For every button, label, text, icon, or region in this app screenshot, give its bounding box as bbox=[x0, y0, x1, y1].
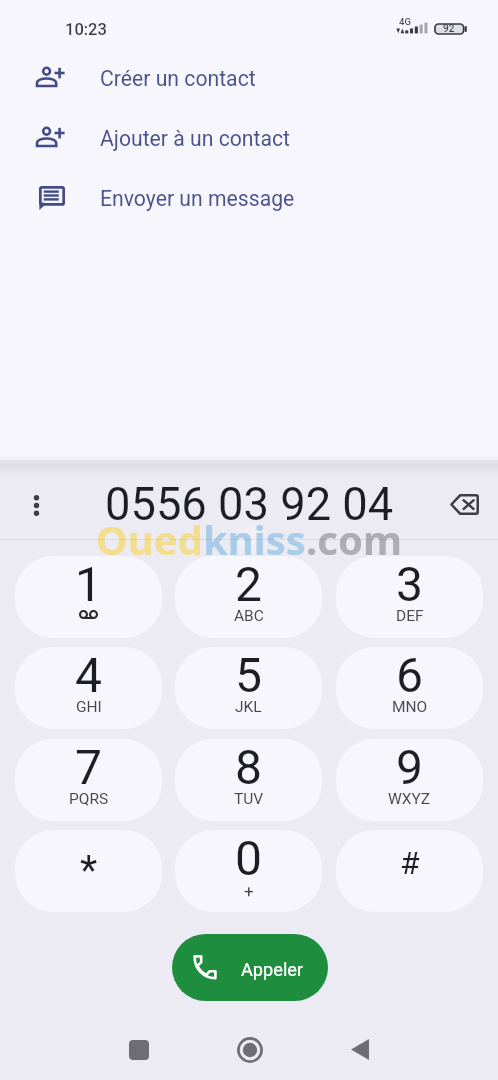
staticText: 92 bbox=[443, 23, 455, 35]
button[interactable]: 3 bbox=[336, 556, 483, 638]
staticText: JKL bbox=[235, 698, 262, 716]
staticText: 9 bbox=[396, 739, 423, 795]
button[interactable]: 7 bbox=[15, 739, 162, 821]
staticText: Oued bbox=[96, 512, 203, 566]
button[interactable]: Créer un contact bbox=[0, 48, 498, 108]
button[interactable]: 9 bbox=[336, 739, 483, 821]
button[interactable]: Appeler bbox=[172, 934, 328, 1001]
button[interactable]: # bbox=[336, 830, 483, 912]
button[interactable]: More options bbox=[21, 488, 51, 522]
button[interactable]: Home bbox=[221, 1021, 278, 1078]
staticText: 10:23 bbox=[65, 20, 107, 39]
staticText: Envoyer un message bbox=[100, 186, 295, 211]
staticText: 4G bbox=[399, 16, 411, 27]
button[interactable]: Recents bbox=[110, 1021, 167, 1078]
button[interactable]: Envoyer un message bbox=[0, 168, 498, 228]
staticText: 7 bbox=[75, 739, 102, 795]
button[interactable]: Backspace bbox=[446, 486, 482, 522]
button[interactable]: 5 bbox=[175, 647, 322, 729]
staticText: 6 bbox=[396, 647, 423, 703]
staticText: .com bbox=[306, 512, 402, 566]
staticText: 0556 03 92 04 bbox=[105, 478, 394, 531]
staticText: + bbox=[244, 881, 254, 901]
staticText: DEF bbox=[396, 607, 424, 625]
button[interactable]: Ajouter à un contact bbox=[0, 108, 498, 168]
button[interactable]: 1 bbox=[15, 556, 162, 638]
staticText: Ajouter à un contact bbox=[100, 126, 291, 151]
staticText: 2 bbox=[235, 556, 262, 612]
button[interactable]: 6 bbox=[336, 647, 483, 729]
staticText: GHI bbox=[76, 698, 102, 716]
button[interactable]: 2 bbox=[175, 556, 322, 638]
staticText: # bbox=[400, 844, 420, 882]
staticText: 8 bbox=[235, 739, 262, 795]
staticText: * bbox=[80, 847, 98, 894]
staticText: WXYZ bbox=[388, 790, 431, 808]
staticText: PQRS bbox=[69, 790, 109, 808]
staticText: kniss bbox=[203, 512, 306, 566]
staticText: 0 bbox=[235, 830, 262, 886]
button[interactable]: Back bbox=[331, 1021, 388, 1078]
staticText: Appeler bbox=[241, 959, 304, 980]
staticText: Créer un contact bbox=[100, 66, 256, 91]
staticText: 1 bbox=[75, 556, 102, 612]
staticText: 4 bbox=[75, 647, 102, 703]
staticText: ABC bbox=[234, 607, 264, 625]
staticText: TUV bbox=[234, 790, 264, 808]
button[interactable]: * bbox=[15, 830, 162, 912]
staticText: MNO bbox=[392, 698, 428, 716]
button[interactable]: 4 bbox=[15, 647, 162, 729]
button[interactable]: 0 bbox=[175, 830, 322, 912]
staticText: 3 bbox=[396, 556, 423, 612]
button[interactable]: 8 bbox=[175, 739, 322, 821]
staticText: 5 bbox=[235, 647, 262, 703]
